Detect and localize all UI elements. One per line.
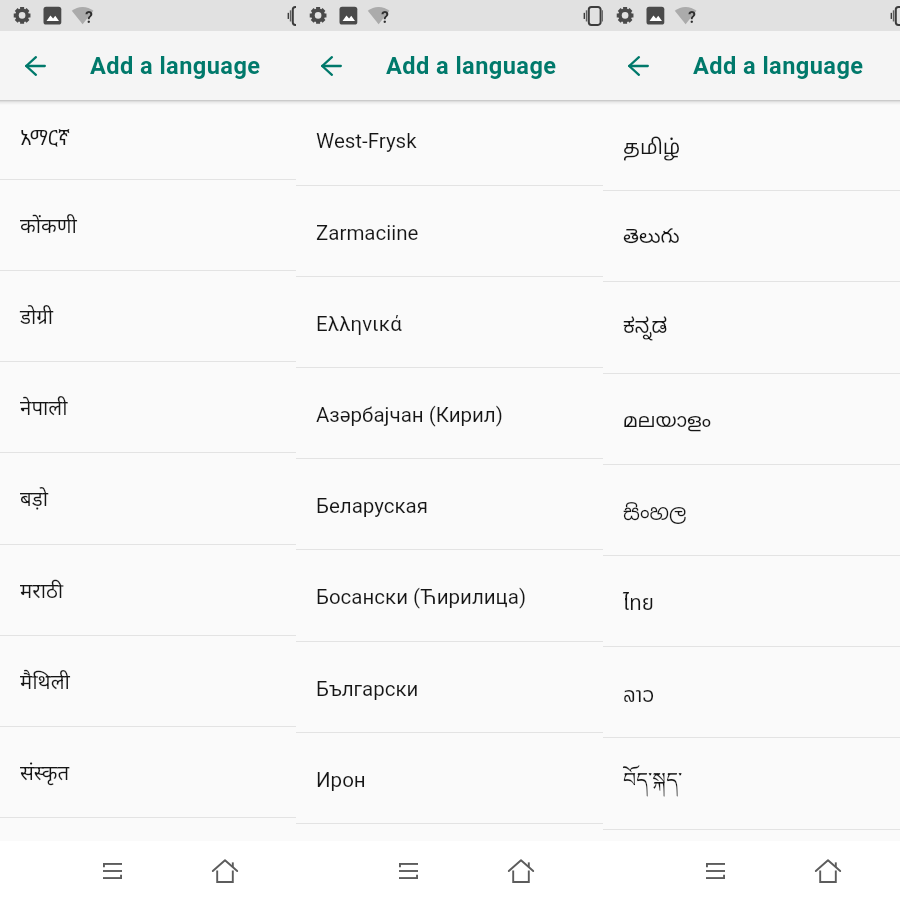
staticText: Ирон	[316, 768, 366, 792]
button[interactable]: தமிழ்	[603, 100, 900, 191]
button[interactable]: བོད་སྐད་	[603, 738, 900, 829]
button[interactable]: Ελληνικά	[296, 277, 603, 368]
button[interactable]: ไทย	[603, 556, 900, 647]
staticText: Азәрбајчан (Кирил)	[316, 403, 503, 427]
staticText: बड़ो	[20, 488, 48, 515]
button[interactable]: తెలుగు	[603, 191, 900, 282]
button[interactable]: नेपाली	[0, 362, 296, 453]
staticText: བོད་སྐད་	[623, 757, 683, 815]
button[interactable]: Беларуская	[296, 459, 603, 550]
staticText: मराठी	[20, 580, 64, 607]
staticText: संस्कृत	[20, 762, 70, 789]
button[interactable]: Back	[628, 56, 649, 76]
button[interactable]: Азәрбајчан (Кирил)	[296, 368, 603, 459]
staticText: தமிழ்	[623, 136, 681, 161]
button[interactable]: ಕನ್ನಡ	[603, 282, 900, 373]
staticText: Zarmaciine	[316, 221, 419, 245]
staticText: डोग्री	[20, 306, 54, 333]
button[interactable]: West-Frysk	[296, 100, 603, 185]
button[interactable]: Zarmaciine	[296, 186, 603, 277]
staticText: Add a language	[693, 52, 864, 80]
button[interactable]: አማርኛ	[0, 100, 296, 180]
staticText: ಕನ್ನಡ	[623, 316, 668, 344]
staticText: मैथिली	[20, 671, 70, 698]
button[interactable]: Back	[25, 56, 46, 76]
button[interactable]: मराठी	[0, 545, 296, 636]
staticText: മലയാളം	[623, 409, 712, 435]
button[interactable]: Home	[806, 842, 850, 900]
staticText: ?	[381, 8, 389, 27]
staticText: ລາວ	[623, 678, 655, 712]
staticText: Босански (Ћирилица)	[316, 585, 527, 609]
staticText: ?	[85, 8, 93, 27]
staticText: አማርኛ	[20, 123, 70, 151]
staticText: ?	[688, 8, 696, 27]
button[interactable]: संस्कृत	[0, 727, 296, 818]
button[interactable]: മലയാളം	[603, 374, 900, 465]
button[interactable]: Recent apps	[693, 842, 737, 900]
staticText: සිංහල	[623, 499, 687, 526]
button[interactable]: Home	[203, 842, 247, 900]
button[interactable]: සිංහල	[603, 465, 900, 556]
button[interactable]: Босански (Ћирилица)	[296, 550, 603, 641]
staticText: Беларуская	[316, 494, 428, 518]
button[interactable]: मैथिली	[0, 636, 296, 727]
button[interactable]: बड़ो	[0, 453, 296, 544]
staticText: West-Frysk	[316, 129, 417, 153]
button[interactable]: ລາວ	[603, 647, 900, 738]
button[interactable]: Recent apps	[90, 842, 134, 900]
staticText: తెలుగు	[623, 225, 680, 253]
button[interactable]: Ирон	[296, 733, 603, 824]
staticText: Add a language	[386, 52, 557, 80]
staticText: कोंकणी	[20, 215, 77, 242]
button[interactable]: डोग्री	[0, 271, 296, 362]
button[interactable]: Български	[296, 642, 603, 733]
button[interactable]: कोंकणी	[0, 180, 296, 271]
staticText: Ελληνικά	[316, 312, 402, 336]
staticText: Add a language	[90, 52, 261, 80]
staticText: Български	[316, 677, 419, 701]
staticText: नेपाली	[20, 397, 68, 424]
button[interactable]: Recent apps	[386, 842, 430, 900]
button[interactable]: Back	[321, 56, 342, 76]
staticText: ไทย	[623, 588, 654, 619]
button[interactable]: Home	[499, 842, 543, 900]
